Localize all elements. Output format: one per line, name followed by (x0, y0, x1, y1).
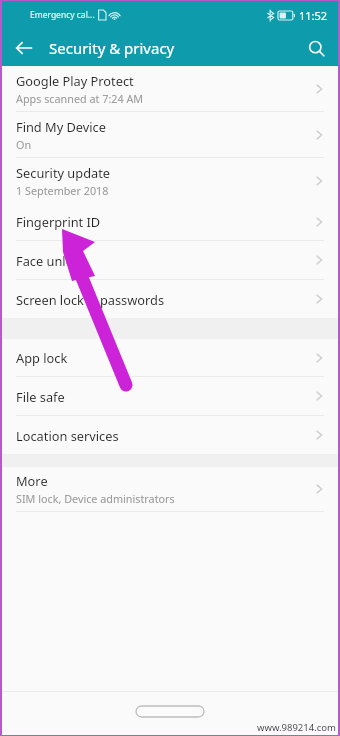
staticText: 1 September 2018 (16, 183, 109, 198)
staticText: Screen lock & passwords (16, 291, 165, 308)
button[interactable]: Home (136, 706, 204, 717)
staticText: Emergency cal... (30, 9, 95, 21)
staticText: SIM lock, Device administrators (16, 491, 175, 506)
staticText: 11:52 (299, 8, 328, 23)
staticText: On (16, 137, 32, 152)
staticText: Apps scanned at 7:24 AM (16, 91, 144, 106)
staticText: App lock (16, 349, 68, 366)
button[interactable]: Location services (2, 416, 338, 454)
staticText: More (16, 472, 48, 489)
button[interactable]: Google Play Protect (2, 66, 338, 111)
button[interactable]: App lock (2, 339, 338, 376)
button[interactable]: Find My Device (2, 112, 338, 157)
button[interactable]: File safe (2, 377, 338, 415)
staticText: File safe (16, 388, 65, 405)
button[interactable]: More (2, 467, 338, 511)
button[interactable]: Security update (2, 158, 338, 203)
staticText: Fingerprint ID (16, 213, 101, 230)
button[interactable]: Search (302, 34, 330, 62)
button[interactable]: Fingerprint ID (2, 203, 338, 240)
button[interactable]: Back (10, 34, 38, 62)
staticText: Google Play Protect (16, 72, 134, 89)
staticText: Location services (16, 427, 119, 444)
button[interactable]: Face unlock (2, 241, 338, 279)
button[interactable]: Screen lock & passwords (2, 280, 338, 318)
staticText: Face unlock (16, 252, 87, 269)
staticText: www.989214.com (257, 721, 336, 734)
staticText: Security & privacy (49, 38, 175, 58)
staticText: Find My Device (16, 118, 106, 135)
staticText: Security update (16, 164, 111, 181)
